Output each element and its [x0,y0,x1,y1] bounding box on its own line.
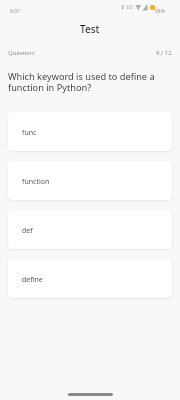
staticText: 6:07 [10,8,20,15]
button[interactable]: define [8,259,172,298]
button[interactable]: func [8,112,172,151]
staticText: 68% [155,8,165,15]
staticText: define [22,275,43,285]
staticText: Which keyword is used to define a functi… [8,70,172,94]
staticText: Question: [8,49,36,57]
other: Status icons [120,3,156,11]
staticText: func [22,128,37,138]
staticText: function [22,177,50,187]
staticText: 9 / 12 [156,49,172,57]
button[interactable]: def [8,210,172,249]
button[interactable]: function [8,161,172,200]
staticText: def [22,226,33,236]
staticText: Test [80,22,100,36]
